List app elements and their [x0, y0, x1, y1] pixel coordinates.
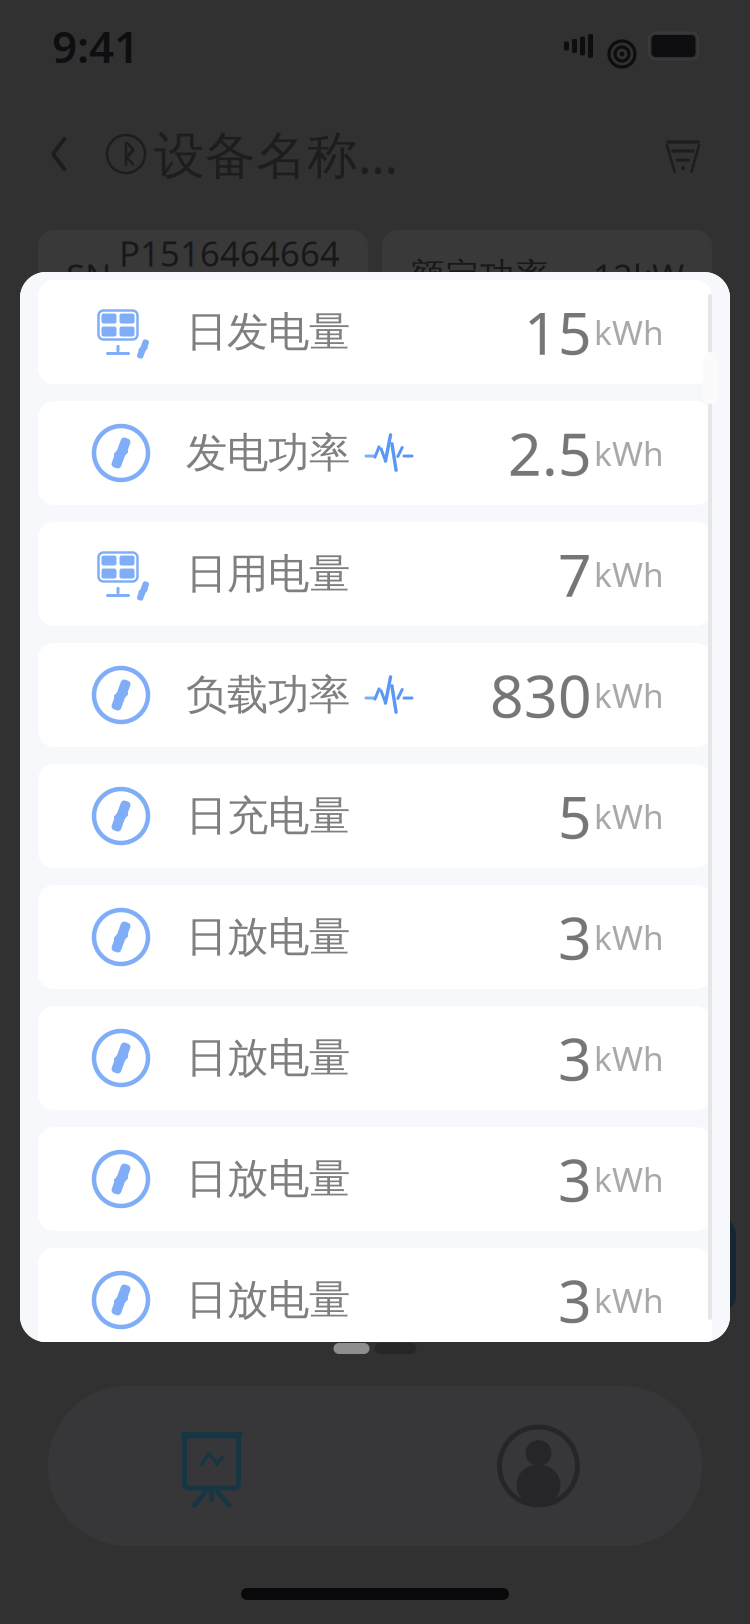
staticText: 负载功率	[186, 670, 350, 720]
staticText: 日充电量	[186, 791, 350, 841]
button[interactable]: 日发电量	[38, 280, 712, 384]
staticText: 日放电量	[186, 1275, 350, 1325]
button[interactable]: 负载功率	[38, 643, 712, 747]
staticText: kWh	[594, 673, 664, 717]
staticText: kWh	[594, 1278, 664, 1322]
staticText: 3	[558, 898, 592, 976]
staticText: kWh	[594, 310, 664, 354]
staticText: 额定功率	[410, 255, 550, 297]
staticText: 日发电量	[186, 307, 350, 357]
staticText: P15164646648	[119, 230, 340, 322]
button[interactable]: 日放电量	[38, 1127, 712, 1231]
button[interactable]: 日充电量	[38, 764, 712, 868]
staticText: 2.5	[508, 414, 592, 492]
staticText: 设备名称…	[154, 120, 398, 188]
staticText: 5	[558, 777, 592, 855]
staticText: kWh	[594, 794, 664, 838]
staticText: 发电功率	[186, 428, 350, 478]
staticText: kWh	[594, 1157, 664, 1201]
staticText: 电源	[130, 1244, 200, 1286]
staticText: 日放电量	[186, 1033, 350, 1083]
staticText: kWh	[594, 1036, 664, 1080]
staticText: 7	[558, 535, 592, 613]
staticText: kWh	[594, 552, 664, 596]
staticText: 3	[558, 1019, 592, 1097]
staticText: 830	[490, 656, 592, 734]
staticText: 日放电量	[186, 912, 350, 962]
button[interactable]: 日放电量	[38, 885, 712, 989]
staticText: 3	[558, 1261, 592, 1339]
button[interactable]: 发电功率	[38, 401, 712, 505]
staticText: 3	[558, 1140, 592, 1218]
button[interactable]: 日放电量	[38, 1006, 712, 1110]
staticText: kWh	[594, 431, 664, 475]
staticText: SN	[66, 253, 111, 299]
staticText: 9:41	[52, 17, 139, 75]
staticText: kWh	[594, 915, 664, 959]
staticText: 15	[524, 293, 592, 371]
staticText: 日用电量	[186, 549, 350, 599]
staticText: 12kW	[593, 253, 684, 299]
button[interactable]: 日放电量	[38, 1248, 712, 1352]
button[interactable]: 日用电量	[38, 522, 712, 626]
staticText: 日放电量	[186, 1154, 350, 1204]
